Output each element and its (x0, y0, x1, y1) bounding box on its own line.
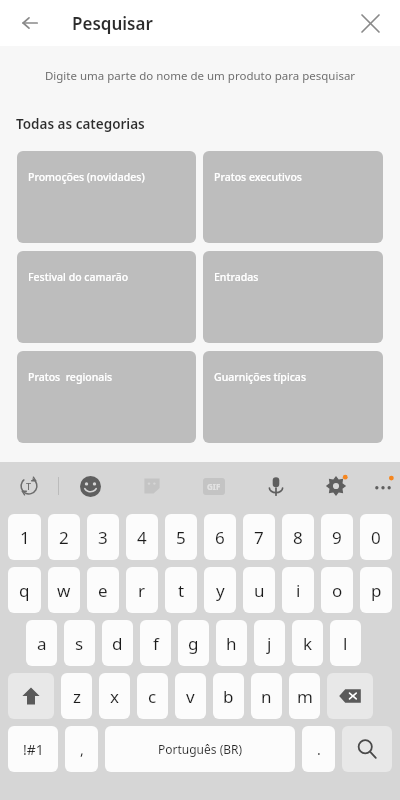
button[interactable]: 7 (243, 514, 275, 560)
button[interactable]: Voice input (245, 462, 307, 510)
staticText: 0 (371, 526, 381, 549)
button[interactable]: Backspace (327, 673, 373, 719)
button[interactable]: x (99, 673, 130, 719)
staticText: 3 (98, 526, 108, 549)
staticText: 2 (59, 526, 69, 549)
button[interactable]: o (321, 567, 353, 613)
button[interactable]: j (254, 620, 285, 666)
button[interactable]: Translate (0, 462, 58, 510)
button[interactable]: f (140, 620, 171, 666)
button[interactable]: v (175, 673, 206, 719)
button[interactable]: c (137, 673, 168, 719)
staticText: d (112, 632, 123, 655)
button[interactable]: 0 (360, 514, 392, 560)
button[interactable]: n (251, 673, 282, 719)
button[interactable]: e (87, 567, 119, 613)
staticText: q (19, 579, 30, 602)
staticText: o (332, 579, 343, 602)
staticText: h (226, 632, 237, 655)
staticText: Festival do camarão (28, 270, 129, 284)
staticText: Pratos executivos (214, 170, 302, 184)
staticText: y (216, 579, 225, 602)
button[interactable]: 6 (204, 514, 236, 560)
button[interactable]: Festival do camarão (17, 251, 196, 343)
button[interactable]: 8 (282, 514, 314, 560)
staticText: 7 (254, 526, 264, 549)
staticText: p (371, 579, 382, 602)
button[interactable]: Search (342, 726, 392, 772)
button[interactable]: k (292, 620, 323, 666)
staticText: 6 (215, 526, 225, 549)
button[interactable]: Pratos executivos (203, 151, 383, 243)
button[interactable]: u (243, 567, 275, 613)
button[interactable]: , (65, 726, 98, 772)
staticText: r (138, 579, 146, 602)
button[interactable]: i (282, 567, 314, 613)
staticText: Entradas (214, 270, 259, 284)
button[interactable]: t (165, 567, 197, 613)
staticText: w (57, 579, 71, 602)
button[interactable]: 2 (48, 514, 80, 560)
staticText: e (98, 579, 108, 602)
button[interactable]: y (204, 567, 236, 613)
staticText: Pratos regionais (28, 370, 113, 384)
staticText: m (297, 685, 313, 708)
button[interactable]: w (48, 567, 80, 613)
staticText: Pesquisar (72, 12, 153, 35)
staticText: v (186, 685, 195, 708)
staticText: i (296, 579, 301, 602)
staticText: . (317, 740, 321, 759)
staticText: Todas as categorias (16, 115, 145, 133)
button[interactable]: a (26, 620, 57, 666)
staticText: 9 (332, 526, 342, 549)
button[interactable]: h (216, 620, 247, 666)
staticText: !#1 (23, 740, 44, 759)
button[interactable]: m (289, 673, 320, 719)
button[interactable]: Emoji (59, 462, 121, 510)
staticText: u (254, 579, 265, 602)
staticText: T (26, 480, 32, 492)
staticText: j (267, 632, 272, 655)
button[interactable]: p (360, 567, 392, 613)
button[interactable]: 3 (87, 514, 119, 560)
button[interactable]: Shift (8, 673, 54, 719)
button[interactable]: b (213, 673, 244, 719)
button[interactable]: Guarnições típicas (203, 351, 383, 443)
staticText: Digite uma parte do nome de um produto p… (16, 68, 384, 84)
button[interactable]: Português (BR) (105, 726, 295, 772)
staticText: k (303, 632, 313, 655)
button[interactable]: 9 (321, 514, 353, 560)
button[interactable]: GIF (183, 462, 245, 510)
staticText: x (110, 685, 119, 708)
button[interactable]: Entradas (203, 251, 383, 343)
button[interactable]: r (126, 567, 158, 613)
button[interactable]: 1 (8, 514, 41, 560)
button[interactable]: Close (350, 3, 390, 43)
button[interactable]: Pratos regionais (17, 351, 196, 443)
staticText: 4 (137, 526, 147, 549)
button[interactable]: . (302, 726, 335, 772)
staticText: c (148, 685, 157, 708)
staticText: 5 (176, 526, 186, 549)
button[interactable]: z (61, 673, 92, 719)
button[interactable]: More options (365, 462, 400, 510)
button[interactable]: q (8, 567, 41, 613)
button[interactable]: d (102, 620, 133, 666)
staticText: 8 (293, 526, 303, 549)
button[interactable]: Stickers (121, 462, 183, 510)
staticText: z (73, 685, 81, 708)
staticText: Guarnições típicas (214, 370, 306, 384)
staticText: f (153, 632, 159, 655)
button[interactable]: !#1 (8, 726, 58, 772)
button[interactable]: 4 (126, 514, 158, 560)
button[interactable]: g (178, 620, 209, 666)
staticText: s (75, 632, 84, 655)
button[interactable]: 5 (165, 514, 197, 560)
staticText: a (37, 632, 47, 655)
button[interactable]: Settings (307, 462, 365, 510)
button[interactable]: l (330, 620, 361, 666)
button[interactable]: Promoções (novidades) (17, 151, 196, 243)
button[interactable]: Back (10, 3, 50, 43)
staticText: GIF (207, 481, 221, 492)
button[interactable]: s (64, 620, 95, 666)
